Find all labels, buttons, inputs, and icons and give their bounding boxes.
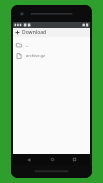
button[interactable]: ..	[13, 39, 90, 50]
staticText: ..	[26, 42, 29, 48]
button[interactable]: Back	[22, 154, 36, 165]
button[interactable]: archive.gz	[13, 50, 90, 61]
button[interactable]: Add	[13, 28, 22, 37]
staticText: Download	[22, 29, 47, 36]
button[interactable]: Recent apps	[67, 154, 81, 165]
staticText: archive.gz	[26, 53, 45, 58]
button[interactable]: Home	[45, 154, 59, 165]
